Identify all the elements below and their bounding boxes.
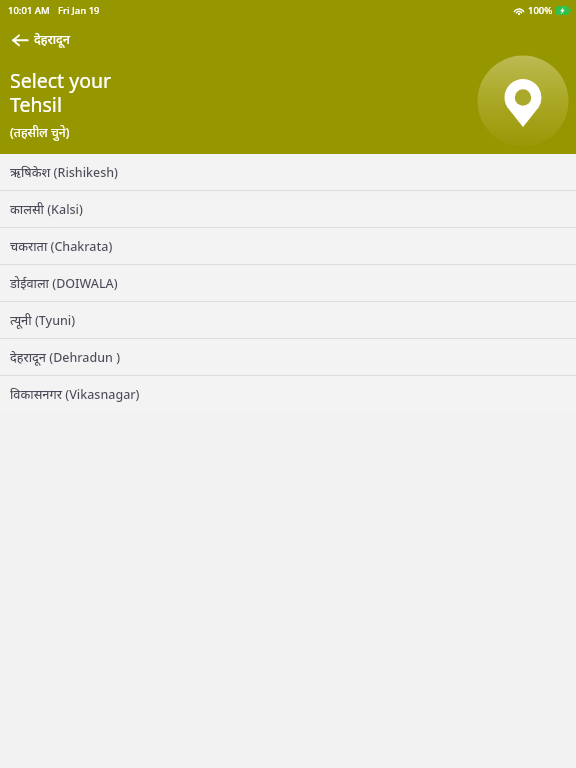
staticText: 10:01 AM [8,4,50,17]
staticText: देहरादून (Dehradun ) [10,349,121,366]
staticText: (तहसील चुने) [10,124,70,141]
staticText: Fri Jan 19 [58,4,100,17]
button[interactable]: देहरादून (Dehradun ) [0,339,576,376]
button[interactable]: चकराता (Chakrata) [0,228,576,265]
staticText: त्यूनी (Tyuni) [10,312,76,329]
staticText: डोईवाला (DOIWALA) [10,275,118,292]
button[interactable]: विकासनगर (Vikasnagar) [0,376,576,412]
other: Location [0,0,576,154]
other: Back [12,32,28,48]
button[interactable]: कालसी (Kalsi) [0,191,576,228]
staticText: ऋषिकेश (Rishikesh) [10,164,119,181]
staticText: विकासनगर (Vikasnagar) [10,386,140,403]
staticText: कालसी (Kalsi) [10,201,83,218]
staticText: चकराता (Chakrata) [10,238,113,255]
button[interactable]: त्यूनी (Tyuni) [0,302,576,339]
button[interactable]: ऋषिकेश (Rishikesh) [0,154,576,191]
staticText: 100% [528,4,553,17]
button[interactable]: डोईवाला (DOIWALA) [0,265,576,302]
button[interactable]: Back [0,29,85,50]
staticText: Select your Tehsil [10,67,112,118]
staticText: देहरादून [34,31,71,48]
